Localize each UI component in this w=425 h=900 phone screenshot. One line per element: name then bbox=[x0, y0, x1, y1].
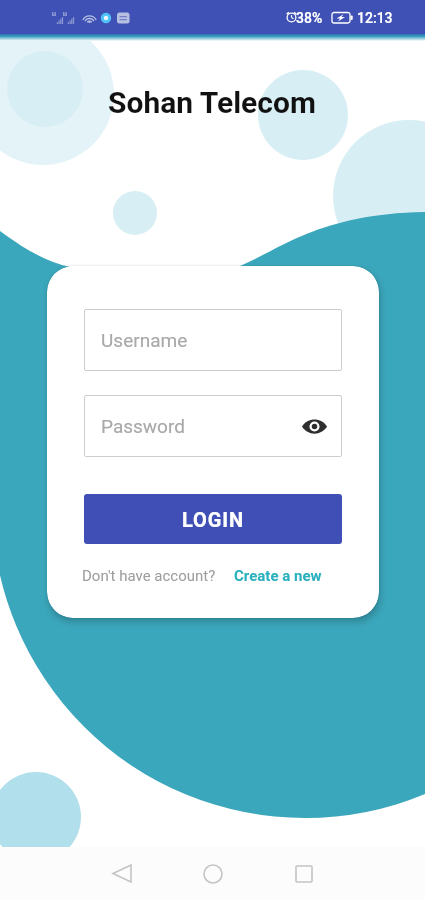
staticText: LOGIN bbox=[182, 508, 245, 531]
button[interactable]: Show password bbox=[299, 411, 329, 441]
button[interactable]: Recents bbox=[260, 847, 348, 900]
staticText: Password bbox=[101, 415, 185, 437]
button[interactable]: Password bbox=[84, 395, 342, 457]
staticText: Sohan Telecom bbox=[108, 85, 316, 120]
button[interactable]: Create a new bbox=[234, 567, 322, 585]
button[interactable]: Back bbox=[78, 847, 166, 900]
staticText: Create a new bbox=[234, 567, 322, 585]
staticText: Username bbox=[101, 329, 188, 351]
staticText: Don't have account? bbox=[82, 567, 216, 585]
button[interactable]: Home bbox=[169, 847, 257, 900]
staticText: 38% bbox=[296, 10, 323, 26]
button[interactable]: Username bbox=[84, 309, 342, 371]
staticText: 12:13 bbox=[357, 10, 393, 26]
button[interactable]: LOGIN bbox=[84, 494, 342, 544]
